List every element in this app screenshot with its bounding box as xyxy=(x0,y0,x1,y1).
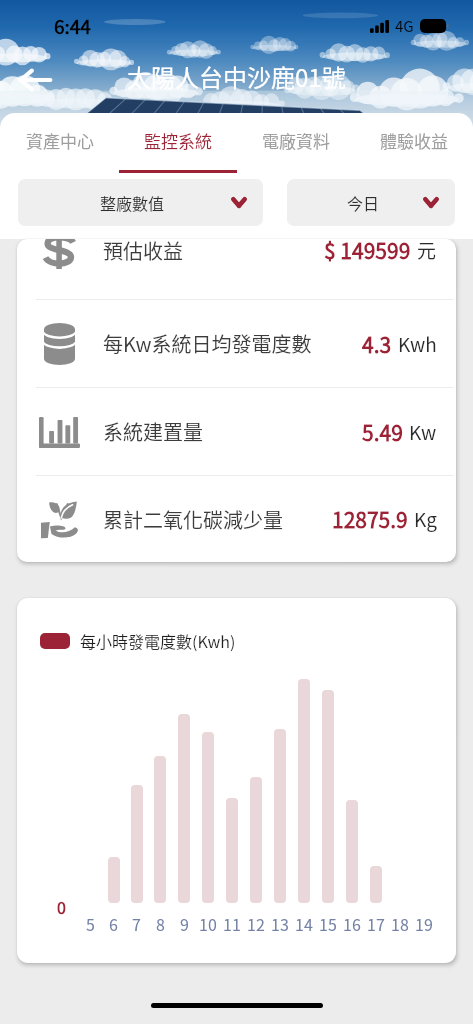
staticText: 每小時發電度數(Kwh) xyxy=(80,629,236,652)
staticText: Kw xyxy=(409,418,437,446)
button[interactable]: 資產中心 xyxy=(0,113,119,173)
button[interactable]: 每Kw系統日均發電度數 xyxy=(17,300,456,387)
staticText: 累計二氧化碳減少量 xyxy=(103,505,283,534)
staticText: 10 xyxy=(199,912,217,935)
staticText: 監控系統 xyxy=(144,128,212,153)
staticText: 整廠數值 xyxy=(100,191,165,214)
staticText: 6 xyxy=(109,912,118,935)
staticText: 12875.9 xyxy=(332,504,408,534)
staticText: 元 xyxy=(417,239,437,264)
button[interactable]: 整廠數值 xyxy=(18,179,263,226)
button[interactable]: 累計二氧化碳減少量 xyxy=(17,476,456,562)
staticText: $ 149599 xyxy=(324,239,411,265)
staticText: 4G xyxy=(395,15,414,37)
staticText: Kwh xyxy=(398,330,437,358)
staticText: 17 xyxy=(367,912,385,935)
staticText: 6:44 xyxy=(54,12,91,40)
staticText: 11 xyxy=(223,912,241,935)
button[interactable]: 體驗收益 xyxy=(355,113,473,173)
staticText: Kg xyxy=(414,505,437,533)
staticText: 0 xyxy=(57,895,66,918)
staticText: 資產中心 xyxy=(26,128,94,153)
button[interactable]: 系統建置量 xyxy=(17,388,456,475)
button[interactable]: 預估收益 xyxy=(17,239,456,280)
staticText: 12 xyxy=(247,912,265,935)
staticText: 體驗收益 xyxy=(380,128,448,153)
button[interactable]: 電廠資料 xyxy=(237,113,355,173)
staticText: 5.49 xyxy=(362,417,403,447)
staticText: 15 xyxy=(319,912,337,935)
button[interactable]: 今日 xyxy=(287,179,455,226)
staticText: 太陽人台中沙鹿01號 xyxy=(127,59,346,94)
staticText: 4.3 xyxy=(362,329,392,359)
staticText: 14 xyxy=(295,912,313,935)
staticText: 每Kw系統日均發電度數 xyxy=(103,329,312,358)
staticText: 預估收益 xyxy=(103,239,183,265)
staticText: 9 xyxy=(180,912,189,935)
staticText: 7 xyxy=(132,912,141,935)
button[interactable]: Back xyxy=(8,54,60,106)
staticText: 16 xyxy=(343,912,361,935)
staticText: 8 xyxy=(156,912,165,935)
staticText: 電廠資料 xyxy=(262,128,330,153)
staticText: 5 xyxy=(86,912,95,935)
button[interactable]: 監控系統 xyxy=(119,113,237,173)
staticText: 今日 xyxy=(347,191,380,214)
staticText: 19 xyxy=(415,912,433,935)
staticText: 18 xyxy=(391,912,409,935)
staticText: 13 xyxy=(271,912,289,935)
staticText: 系統建置量 xyxy=(103,417,203,446)
